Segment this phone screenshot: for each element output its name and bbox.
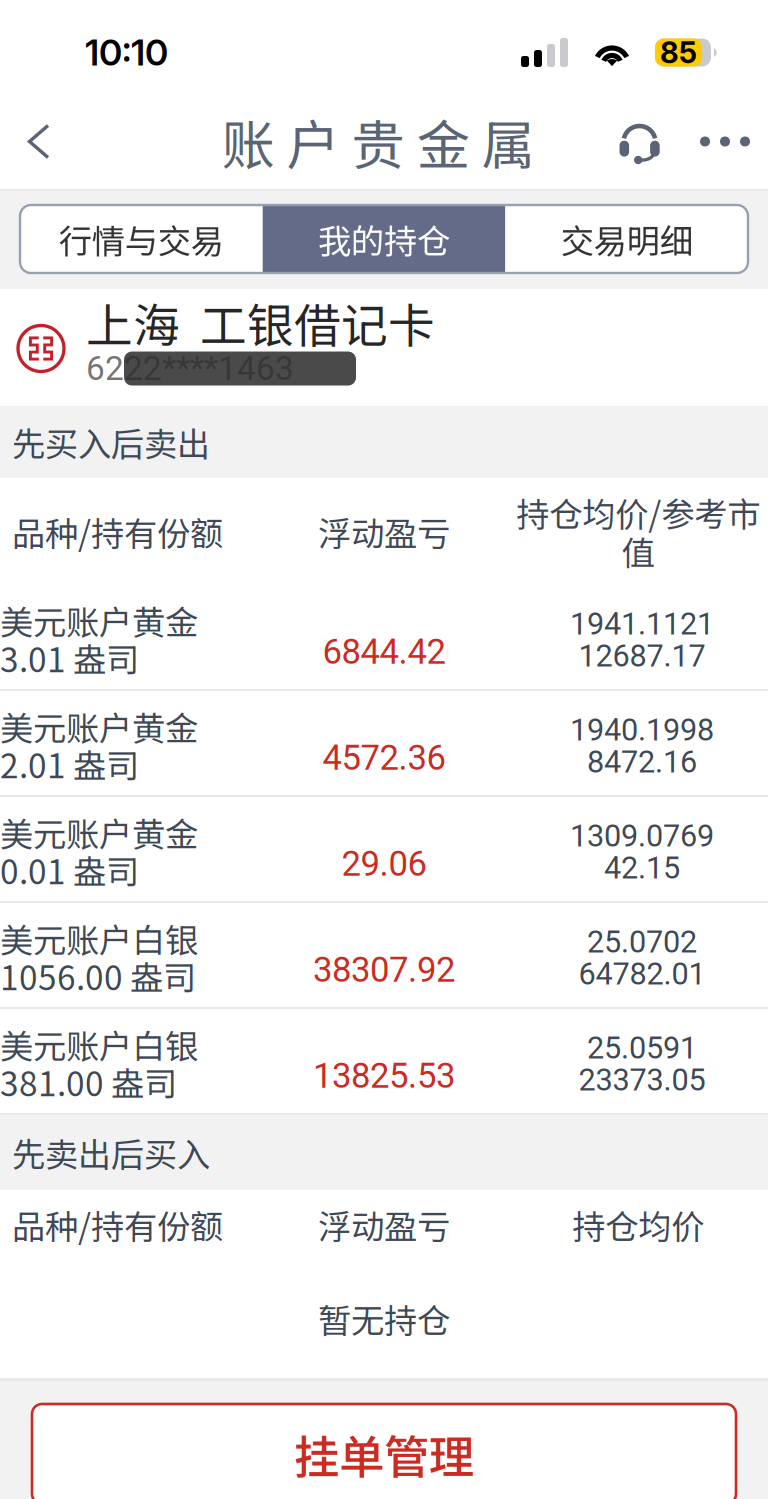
- button[interactable]: More: [682, 94, 768, 189]
- button[interactable]: 美元账户白银: [0, 903, 768, 1009]
- staticText: 1309.0769: [570, 820, 714, 852]
- staticText: 持仓均价/参考市值: [516, 493, 760, 570]
- staticText: 42.15: [604, 852, 680, 884]
- staticText: 浮动盈亏: [318, 1205, 450, 1244]
- staticText: 品种/持有份额: [12, 1205, 223, 1244]
- staticText: 1941.1121: [570, 608, 714, 640]
- staticText: 1056.00 盎司: [0, 957, 196, 995]
- button[interactable]: Customer service: [597, 94, 682, 189]
- staticText: 4572.36: [322, 738, 445, 778]
- staticText: 上海 工银借记卡: [86, 295, 435, 350]
- staticText: 25.0702: [587, 926, 697, 958]
- staticText: 6844.42: [322, 632, 445, 672]
- staticText: 暂无持仓: [318, 1294, 450, 1343]
- staticText: 我的持仓: [318, 215, 450, 263]
- staticText: 美元账户白银: [0, 1025, 198, 1063]
- staticText: 29.06: [341, 844, 426, 884]
- staticText: 账户贵金属: [221, 103, 534, 180]
- staticText: 23373.05: [578, 1064, 705, 1096]
- staticText: 美元账户白银: [0, 919, 198, 957]
- staticText: 64782.01: [578, 958, 705, 990]
- button[interactable]: 美元账户黄金: [0, 797, 768, 903]
- staticText: 先卖出后买入: [12, 1128, 210, 1177]
- staticText: 持仓均价: [572, 1205, 704, 1244]
- staticText: 美元账户黄金: [0, 601, 198, 639]
- staticText: 0.01 盎司: [0, 851, 139, 889]
- staticText: 85: [660, 35, 697, 70]
- staticText: 行情与交易: [59, 215, 224, 263]
- staticText: 1940.1998: [570, 714, 714, 746]
- staticText: 挂单管理: [294, 1421, 474, 1487]
- staticText: 浮动盈亏: [318, 512, 450, 551]
- button[interactable]: 我的持仓: [263, 205, 505, 273]
- staticText: 3.01 盎司: [0, 639, 139, 677]
- staticText: 先买入后卖出: [12, 418, 210, 466]
- staticText: 381.00 盎司: [0, 1063, 177, 1101]
- staticText: 品种/持有份额: [12, 512, 223, 551]
- staticText: 10:10: [85, 31, 168, 74]
- button[interactable]: 美元账户黄金: [0, 585, 768, 691]
- staticText: 8472.16: [587, 746, 697, 778]
- button[interactable]: 挂单管理: [32, 1404, 736, 1499]
- button[interactable]: 交易明细: [505, 205, 748, 273]
- button[interactable]: Back: [0, 94, 78, 189]
- staticText: 25.0591: [587, 1032, 697, 1064]
- staticText: 交易明细: [561, 215, 693, 263]
- staticText: 美元账户黄金: [0, 813, 198, 851]
- button[interactable]: 行情与交易: [20, 205, 263, 273]
- staticText: 13825.53: [313, 1056, 455, 1096]
- staticText: 6222****1463: [86, 350, 294, 387]
- staticText: 美元账户黄金: [0, 707, 198, 745]
- staticText: 2.01 盎司: [0, 745, 139, 783]
- staticText: 12687.17: [578, 640, 705, 672]
- button[interactable]: 美元账户白银: [0, 1009, 768, 1115]
- button[interactable]: 美元账户黄金: [0, 691, 768, 797]
- staticText: 38307.92: [313, 950, 455, 990]
